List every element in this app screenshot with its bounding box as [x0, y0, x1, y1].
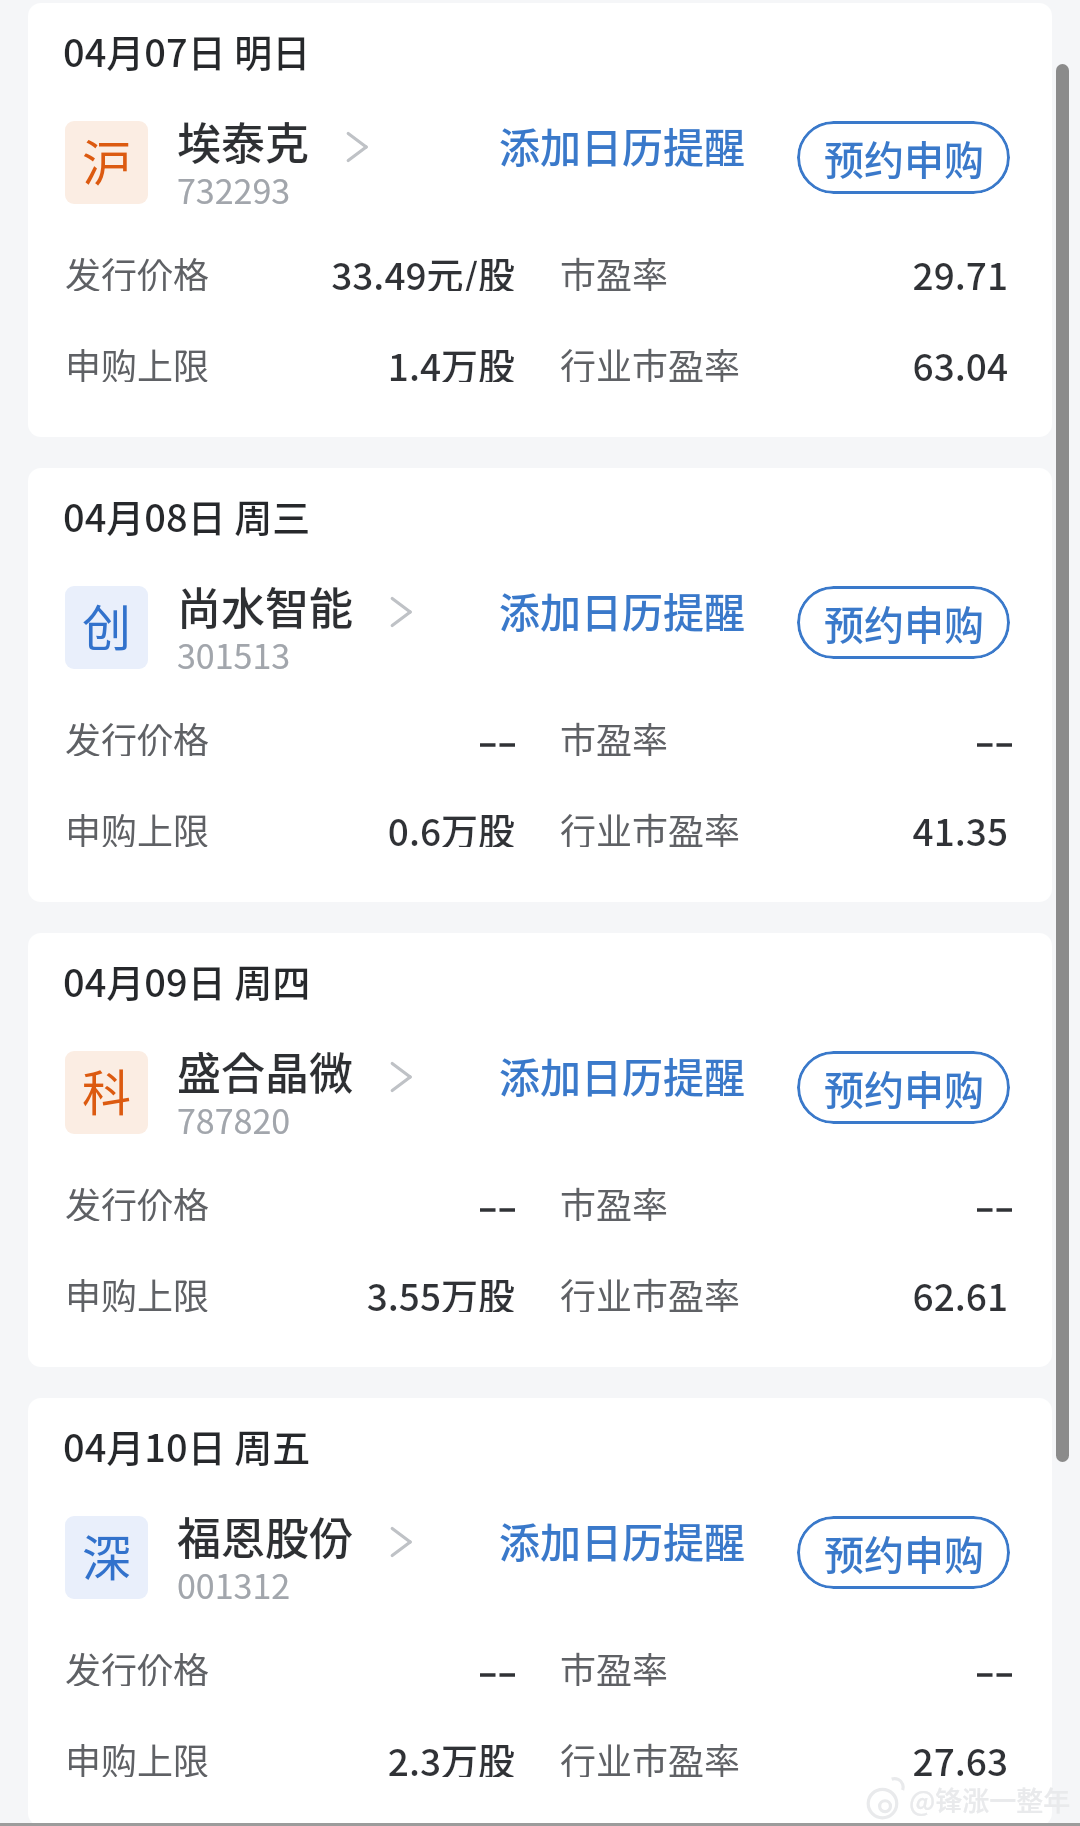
button[interactable]: 尚水智能: [177, 574, 412, 638]
staticText: 04月08日 周三: [63, 488, 311, 543]
button[interactable]: 04月08日 周三: [28, 468, 1052, 902]
staticText: 市盈率: [560, 1177, 669, 1221]
staticText: 福恩股份: [177, 1504, 353, 1568]
staticText: 预约申购: [824, 1059, 984, 1117]
button[interactable]: 埃泰克: [177, 109, 368, 173]
staticText: 29.71: [669, 247, 1008, 291]
staticText: 27.63: [741, 1733, 1008, 1777]
button[interactable]: 预约申购: [797, 121, 1010, 194]
staticText: 发行价格: [65, 247, 210, 291]
staticText: 63.04: [741, 338, 1008, 382]
staticText: 埃泰克: [177, 109, 309, 173]
staticText: 2.3万股: [210, 1733, 515, 1777]
staticText: 创: [82, 589, 132, 660]
staticText: @锋涨一整年: [909, 1780, 1071, 1819]
staticText: 添加日历提醒: [499, 115, 745, 174]
staticText: 001312: [177, 1560, 291, 1609]
staticText: 301513: [177, 630, 291, 679]
staticText: 预约申购: [824, 129, 984, 187]
staticText: 发行价格: [65, 1177, 210, 1221]
staticText: 3.55万股: [210, 1268, 515, 1312]
other: 查看股票详情: [390, 1060, 412, 1094]
button[interactable]: 福恩股份: [177, 1504, 412, 1568]
staticText: 行业市盈率: [560, 803, 741, 847]
staticText: 33.49元/股: [210, 247, 515, 291]
button[interactable]: 04月09日 周四: [28, 933, 1052, 1367]
staticText: 1.4万股: [210, 338, 515, 382]
button[interactable]: 04月10日 周五: [28, 1398, 1052, 1826]
button[interactable]: 预约申购: [797, 1516, 1010, 1589]
button[interactable]: 添加日历提醒: [495, 572, 749, 647]
staticText: 0.6万股: [210, 803, 515, 847]
staticText: 发行价格: [65, 1642, 210, 1686]
staticText: 732293: [177, 165, 291, 214]
staticText: 科: [82, 1054, 132, 1125]
staticText: 盛合晶微: [177, 1039, 353, 1103]
staticText: 申购上限: [65, 1268, 210, 1312]
staticText: 发行价格: [65, 712, 210, 756]
button[interactable]: 04月07日 明日: [28, 3, 1052, 437]
other: 查看股票详情: [390, 595, 412, 629]
button[interactable]: 预约申购: [797, 1051, 1010, 1124]
other: 查看股票详情: [346, 130, 368, 164]
staticText: 市盈率: [560, 1642, 669, 1686]
staticText: 申购上限: [65, 1733, 210, 1777]
staticText: 行业市盈率: [560, 338, 741, 382]
other: 查看股票详情: [390, 1525, 412, 1559]
staticText: 预约申购: [824, 1524, 984, 1582]
staticText: 申购上限: [65, 803, 210, 847]
staticText: 行业市盈率: [560, 1268, 741, 1312]
button[interactable]: 盛合晶微: [177, 1039, 412, 1103]
button[interactable]: 预约申购: [797, 586, 1010, 659]
staticText: 787820: [177, 1095, 291, 1144]
staticText: 添加日历提醒: [499, 1045, 745, 1104]
staticText: 41.35: [741, 803, 1008, 847]
staticText: 04月09日 周四: [63, 953, 311, 1008]
staticText: 市盈率: [560, 247, 669, 291]
staticText: 申购上限: [65, 338, 210, 382]
button[interactable]: 添加日历提醒: [495, 107, 749, 182]
button[interactable]: 添加日历提醒: [495, 1502, 749, 1577]
staticText: 沪: [82, 124, 132, 195]
staticText: 预约申购: [824, 594, 984, 652]
staticText: 尚水智能: [177, 574, 353, 638]
staticText: 市盈率: [560, 712, 669, 756]
staticText: 04月10日 周五: [63, 1418, 311, 1473]
staticText: 深: [82, 1519, 132, 1590]
staticText: 添加日历提醒: [499, 580, 745, 639]
staticText: 62.61: [741, 1268, 1008, 1312]
staticText: 添加日历提醒: [499, 1510, 745, 1569]
button[interactable]: 添加日历提醒: [495, 1037, 749, 1112]
staticText: 04月07日 明日: [63, 23, 311, 78]
staticText: 行业市盈率: [560, 1733, 741, 1777]
